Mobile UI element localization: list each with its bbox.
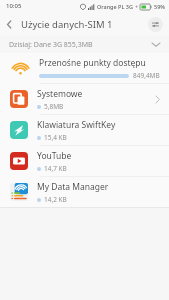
staticText: 5,8MB	[44, 102, 64, 111]
staticText: My Data Manager	[37, 181, 109, 193]
staticText: 849,4MB	[133, 71, 160, 80]
staticText: Klawiatura SwiftKey	[37, 119, 116, 131]
staticText: YouTube	[37, 150, 72, 162]
button[interactable]: Dzisiaj: Dane 3G 855,3MB	[0, 36, 169, 53]
button[interactable]: Filter	[148, 17, 163, 32]
staticText: 15,4 KB	[44, 133, 67, 142]
staticText: +	[135, 3, 139, 10]
staticText: Użycie danych-SIM 1	[21, 18, 113, 31]
button[interactable]: YouTube	[0, 146, 169, 176]
button[interactable]: Back	[0, 15, 18, 33]
staticText: 59%	[154, 3, 165, 10]
staticText: Orange PL 3G	[97, 3, 133, 10]
staticText: 10:05	[6, 2, 22, 10]
staticText: 14,2 KB	[44, 195, 67, 204]
staticText: Dzisiaj: Dane 3G 855,3MB	[9, 40, 93, 50]
staticText: 14,7 KB	[44, 164, 67, 173]
staticText: Systemowe	[37, 88, 83, 100]
button[interactable]: Przenośne punkty dostępu	[0, 53, 169, 83]
button[interactable]: My Data Manager	[0, 177, 169, 207]
button[interactable]: Systemowe	[0, 84, 169, 114]
button[interactable]: Klawiatura SwiftKey	[0, 115, 169, 145]
staticText: Przenośne punkty dostępu	[39, 57, 146, 69]
